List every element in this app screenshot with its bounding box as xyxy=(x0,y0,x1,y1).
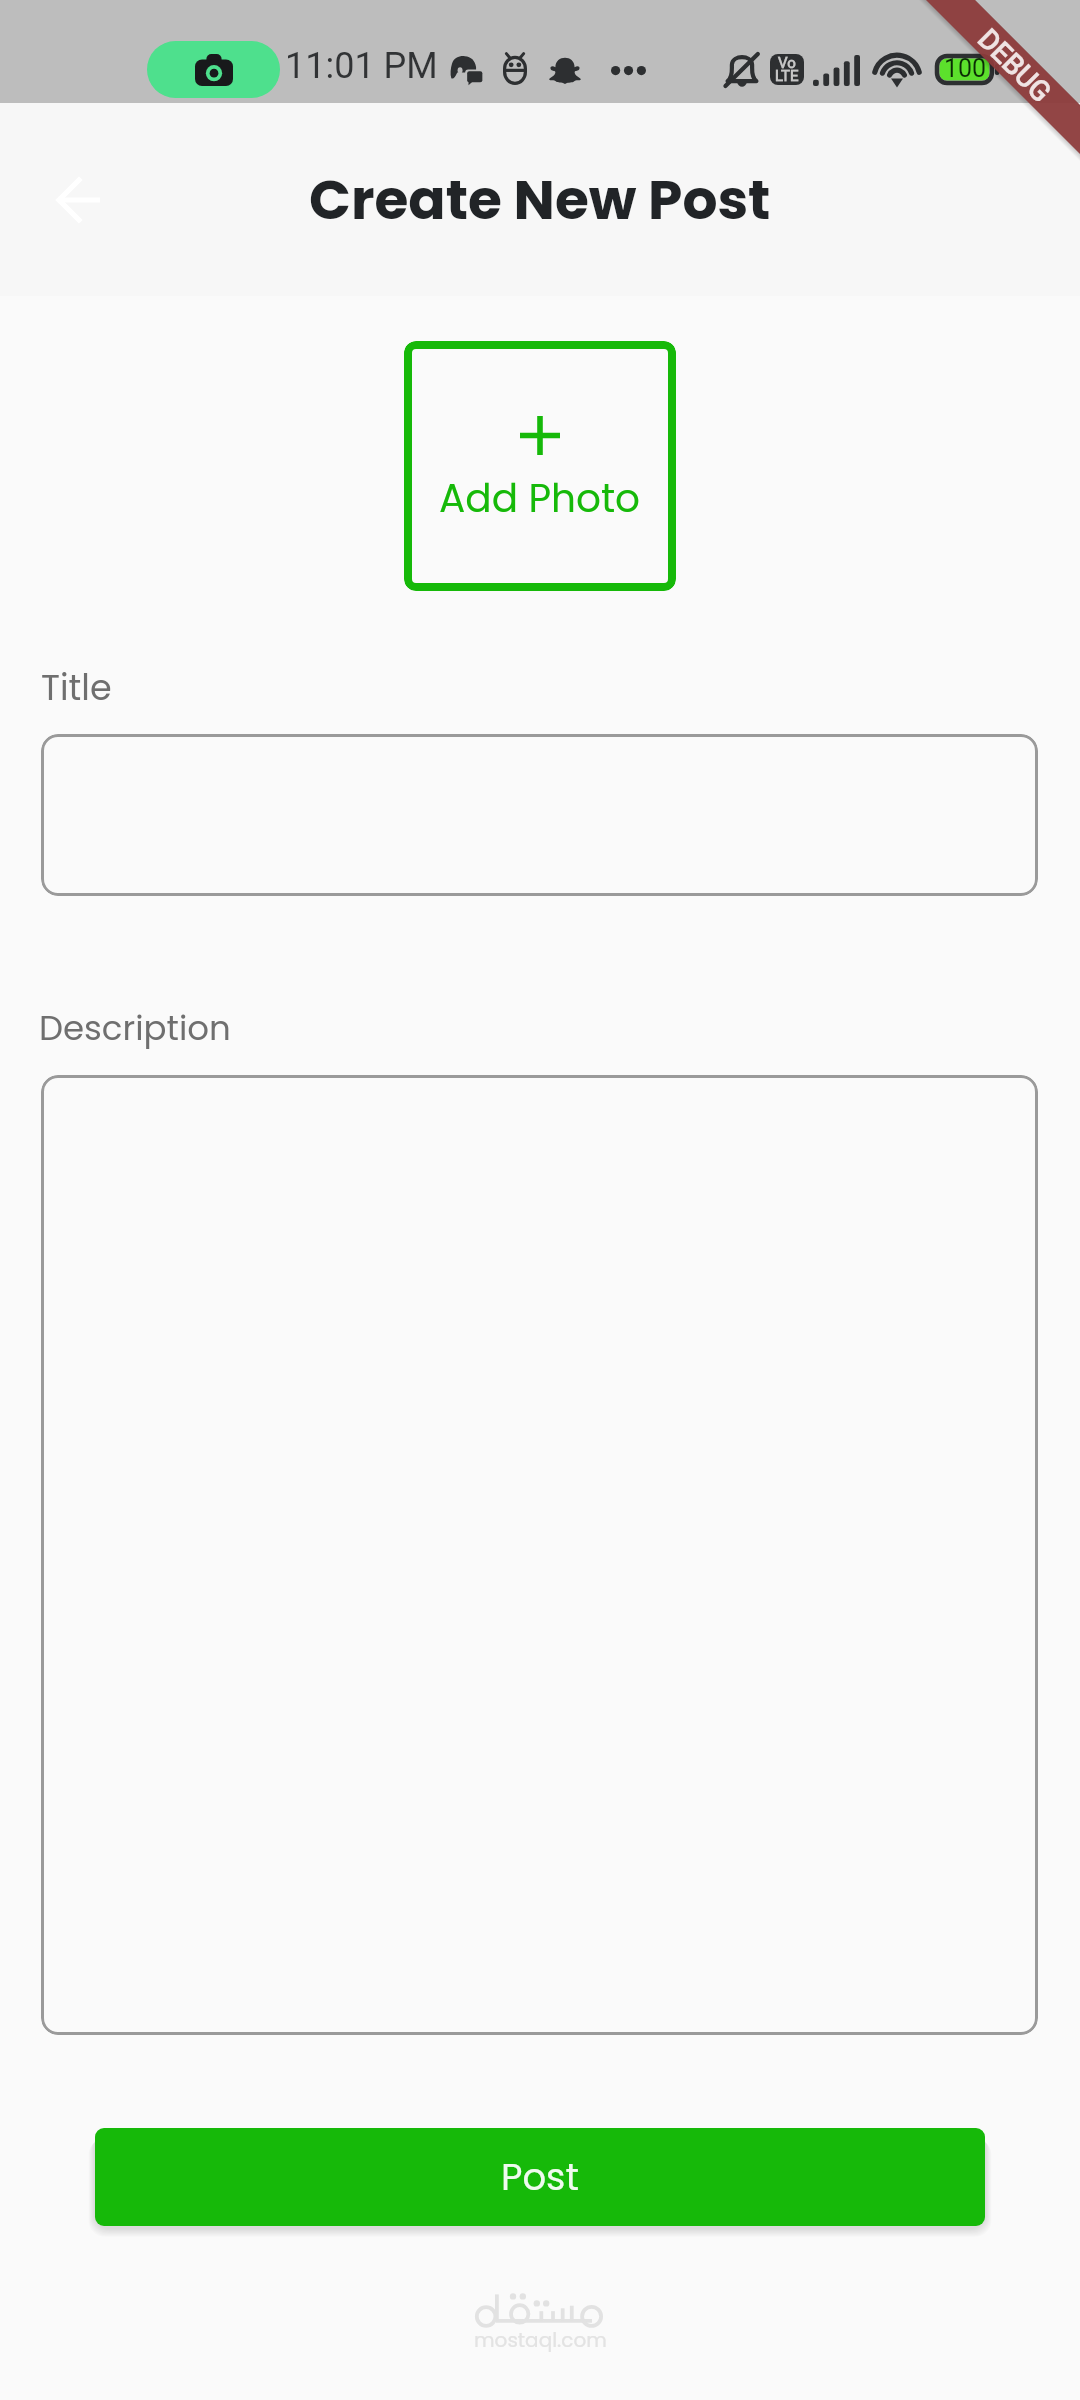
button[interactable]: Post xyxy=(95,2128,985,2226)
button[interactable] xyxy=(41,1075,1038,2035)
staticText: 11:01 PM xyxy=(285,45,438,87)
staticText: mostaql.com xyxy=(474,2326,607,2354)
staticText: Title xyxy=(41,663,112,712)
staticText: Add Photo xyxy=(439,471,641,526)
staticText: DEBUG xyxy=(971,22,1058,109)
staticText: Description xyxy=(39,1004,231,1052)
staticText: 100 xyxy=(944,54,987,83)
staticText: Post xyxy=(501,2151,579,2203)
button[interactable] xyxy=(41,734,1038,896)
staticText: Create New Post xyxy=(309,161,771,238)
button[interactable]: Add Photo xyxy=(404,341,676,591)
staticText: Vo xyxy=(778,54,796,72)
staticText: LTE xyxy=(775,67,799,85)
